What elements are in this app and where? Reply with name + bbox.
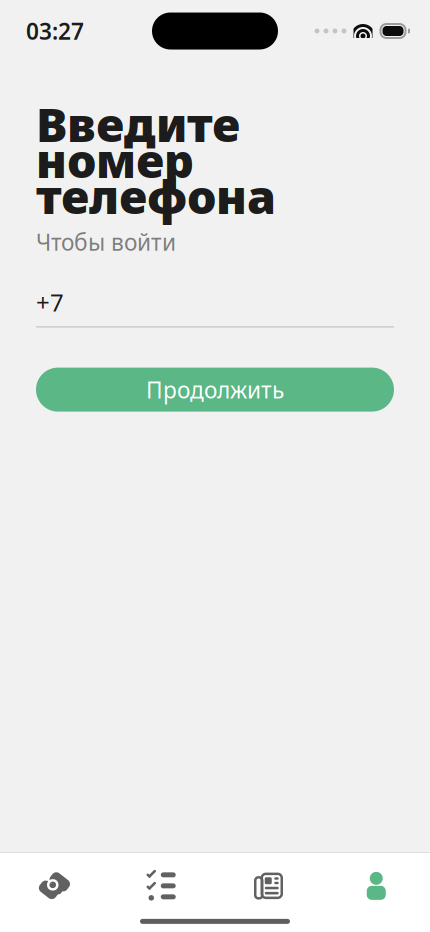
staticText: Введите bbox=[36, 93, 240, 155]
button[interactable]: Новости bbox=[215, 853, 322, 919]
button[interactable]: Задачи bbox=[107, 853, 215, 919]
staticText: телефона bbox=[36, 165, 276, 227]
staticText: +7 bbox=[36, 286, 64, 318]
button[interactable]: Продолжить bbox=[36, 368, 394, 412]
staticText: 03:27 bbox=[26, 16, 84, 46]
staticText: Продолжить bbox=[146, 375, 284, 405]
button[interactable]: Сделки bbox=[0, 853, 107, 919]
staticText: номер bbox=[36, 129, 194, 191]
staticText: Чтобы войти bbox=[36, 227, 176, 257]
button[interactable]: Профиль bbox=[322, 853, 430, 919]
